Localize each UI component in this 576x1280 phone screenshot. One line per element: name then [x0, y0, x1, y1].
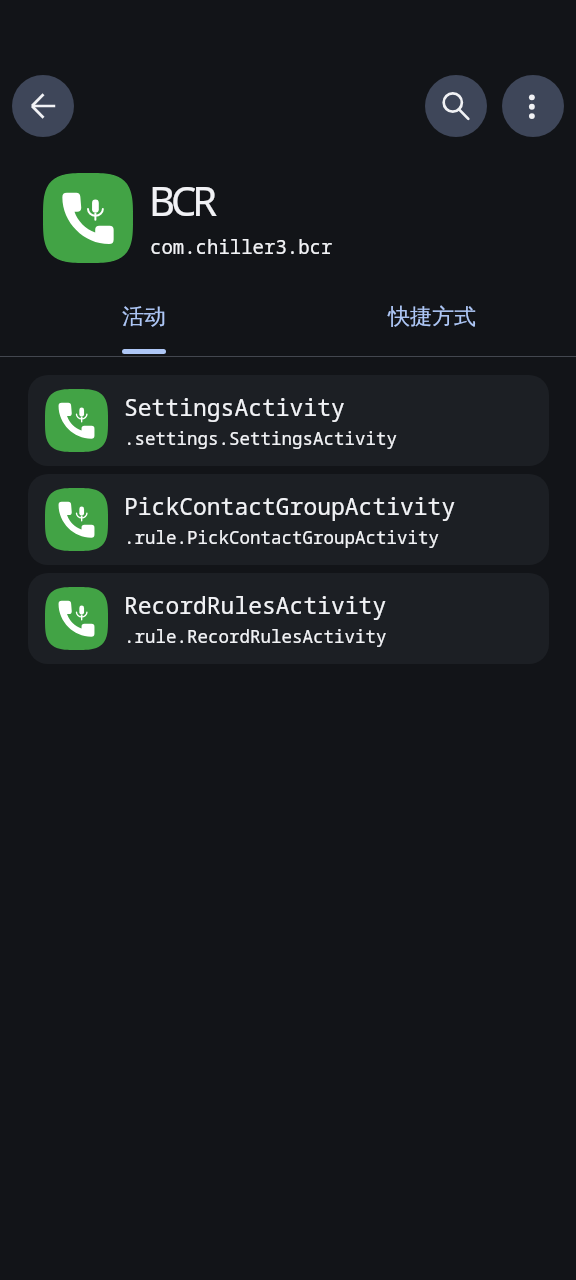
staticText: .rule.RecordRulesActivity	[124, 624, 387, 648]
staticText: .rule.PickContactGroupActivity	[124, 525, 439, 549]
button[interactable]: 快捷方式	[288, 290, 576, 356]
button[interactable]: PickContactGroupActivity	[28, 474, 549, 565]
staticText: .settings.SettingsActivity	[124, 426, 397, 450]
button[interactable]: RecordRulesActivity	[28, 573, 549, 664]
staticText: RecordRulesActivity	[124, 589, 387, 620]
button[interactable]: More options	[502, 75, 564, 137]
staticText: BCR	[149, 173, 214, 227]
staticText: 快捷方式	[388, 303, 476, 331]
button[interactable]: Back	[12, 75, 74, 137]
button[interactable]: 活动	[0, 290, 288, 356]
button[interactable]: Search	[425, 75, 487, 137]
staticText: SettingsActivity	[124, 391, 345, 422]
staticText: com.chiller3.bcr	[150, 234, 333, 260]
staticText: 活动	[122, 303, 166, 331]
button[interactable]: SettingsActivity	[28, 375, 549, 466]
staticText: PickContactGroupActivity	[124, 490, 456, 521]
